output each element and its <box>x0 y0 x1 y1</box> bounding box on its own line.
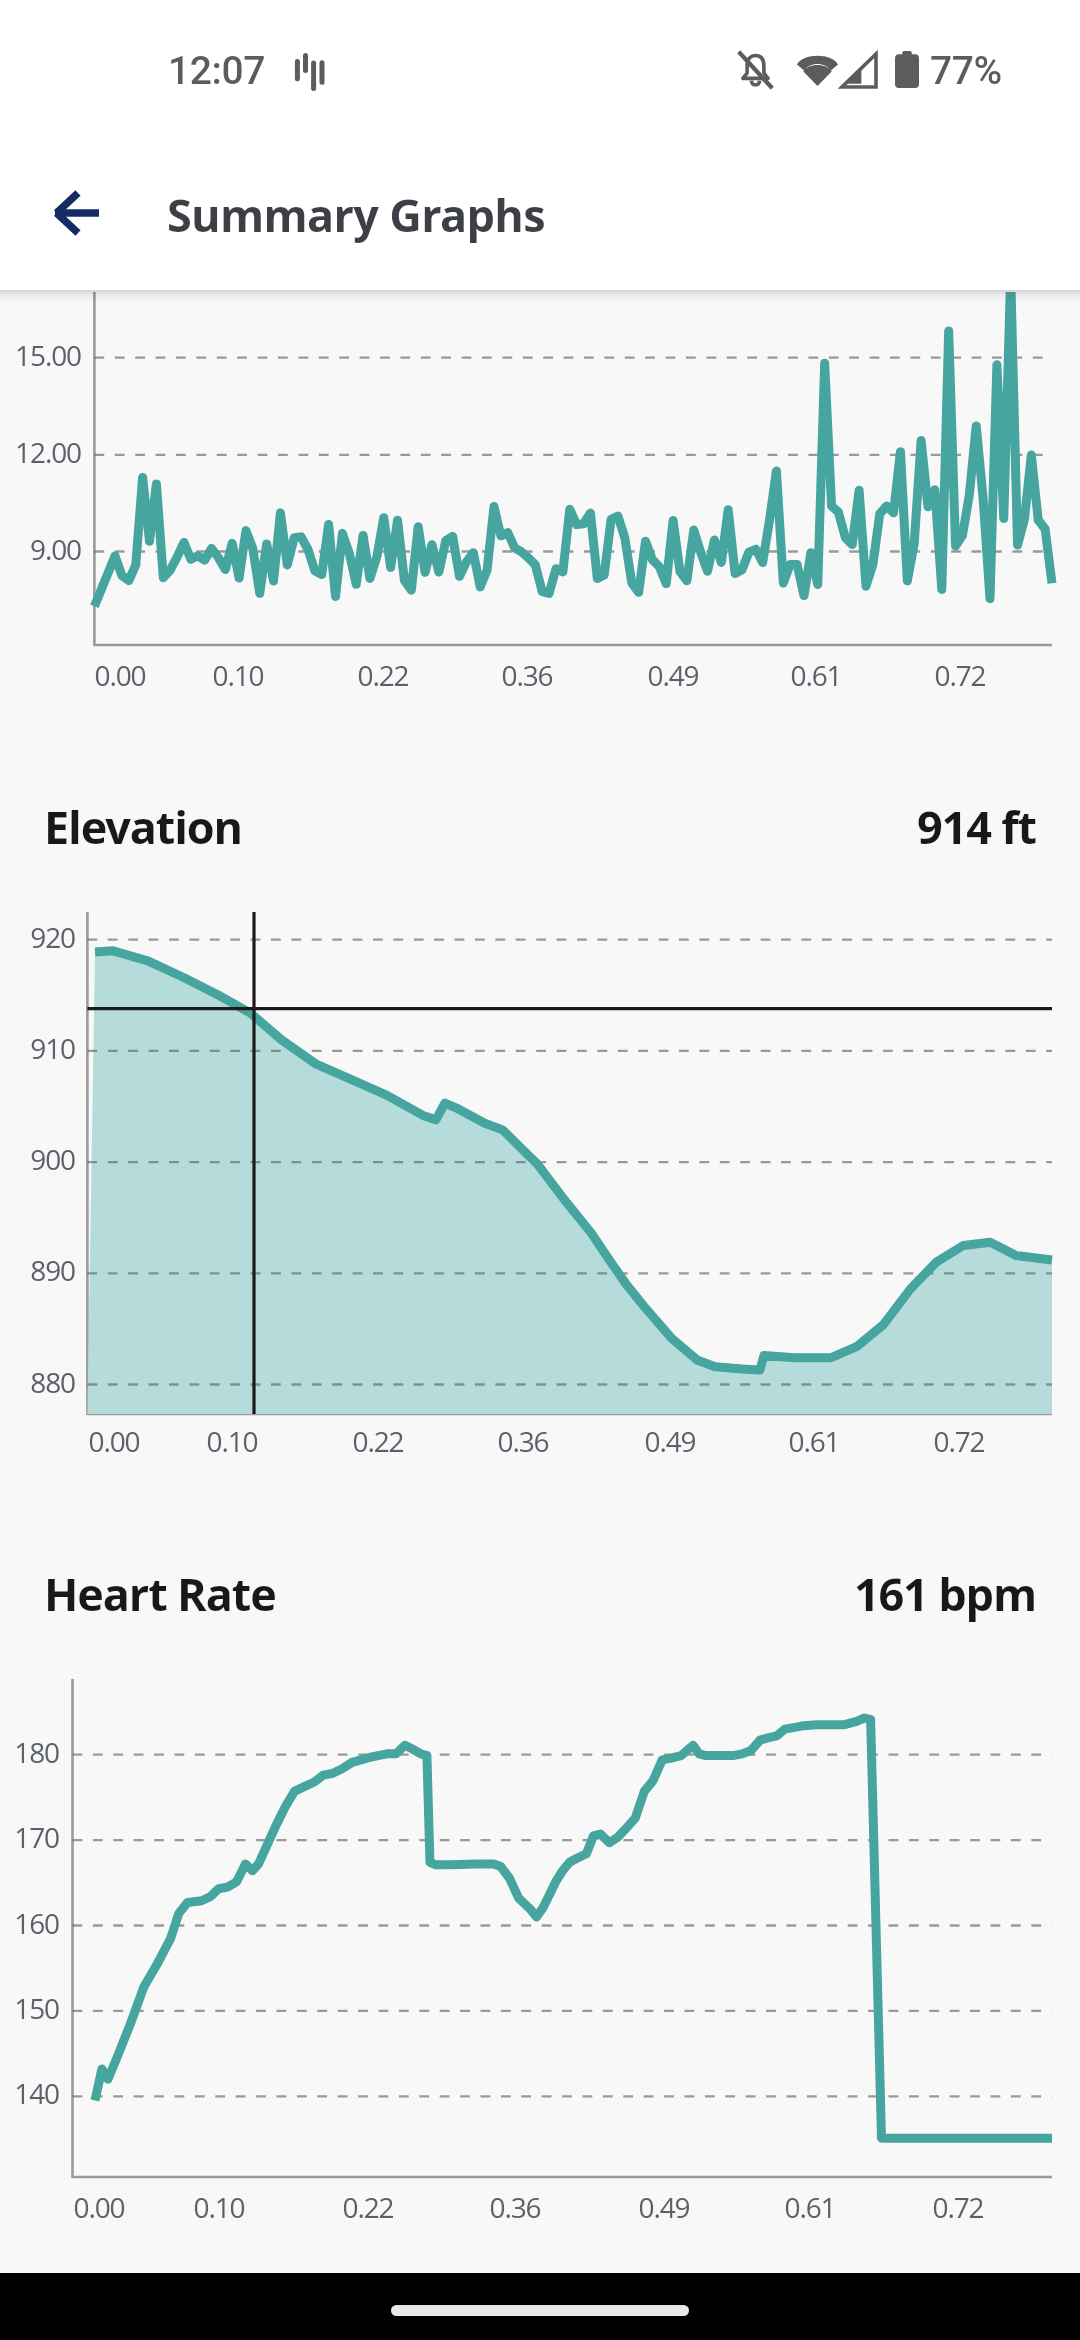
staticText: 0.22 <box>308 2188 428 2226</box>
staticText: 0.72 <box>898 2188 1018 2226</box>
staticText: 170 <box>0 1818 59 1856</box>
staticText: 0.10 <box>178 656 298 694</box>
staticText: 0.22 <box>323 656 443 694</box>
staticText: Elevation <box>44 796 242 857</box>
staticText: 15.00 <box>0 336 81 374</box>
staticText: 0.72 <box>900 656 1020 694</box>
staticText: 140 <box>0 2074 59 2112</box>
staticText: 161 bpm <box>536 1563 1036 1624</box>
staticText: 0.36 <box>467 656 587 694</box>
staticText: 9.00 <box>0 530 81 568</box>
staticText: 0.00 <box>54 1422 174 1460</box>
staticText: Summary Graphs <box>167 184 545 245</box>
staticText: 0.10 <box>172 1422 292 1460</box>
staticText: 920 <box>0 918 75 956</box>
staticText: 0.49 <box>610 1422 730 1460</box>
staticText: 0.10 <box>159 2188 279 2226</box>
staticText: 12:07 <box>168 48 266 94</box>
staticText: Heart Rate <box>44 1563 276 1624</box>
staticText: 910 <box>0 1029 75 1067</box>
staticText: 890 <box>0 1251 75 1289</box>
staticText: 0.22 <box>318 1422 438 1460</box>
staticText: 0.61 <box>756 656 876 694</box>
staticText: 0.72 <box>899 1422 1019 1460</box>
staticText: 0.36 <box>455 2188 575 2226</box>
staticText: 77% <box>930 48 1002 94</box>
staticText: 880 <box>0 1363 75 1401</box>
staticText: 0.61 <box>754 1422 874 1460</box>
staticText: 0.00 <box>39 2188 159 2226</box>
staticText: 0.49 <box>604 2188 724 2226</box>
staticText: 180 <box>0 1733 59 1771</box>
staticText: 0.49 <box>613 656 733 694</box>
staticText: 900 <box>0 1140 75 1178</box>
staticText: 0.00 <box>60 656 180 694</box>
staticText: 12.00 <box>0 433 81 471</box>
staticText: 0.61 <box>750 2188 870 2226</box>
staticText: 914 ft <box>536 796 1036 857</box>
staticText: 0.36 <box>463 1422 583 1460</box>
button[interactable]: Navigate back <box>14 154 132 272</box>
staticText: 150 <box>0 1989 59 2027</box>
staticText: 160 <box>0 1904 59 1942</box>
